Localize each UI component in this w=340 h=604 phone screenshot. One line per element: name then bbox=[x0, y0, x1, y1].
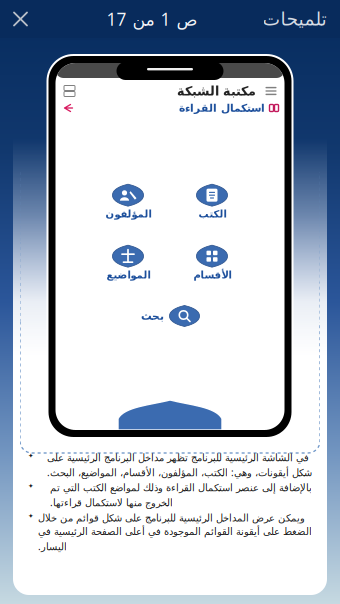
button[interactable]: الأقسام bbox=[176, 241, 248, 285]
staticText: ص 1 من 17 bbox=[106, 7, 197, 31]
staticText: تلميحات bbox=[262, 8, 326, 30]
staticText: المواضيع bbox=[106, 269, 150, 281]
button[interactable]: المؤلفون bbox=[92, 180, 164, 224]
staticText: ✦ bbox=[28, 482, 34, 490]
button[interactable]: قوائم bbox=[60, 82, 78, 100]
staticText: المؤلفون bbox=[105, 208, 151, 220]
button[interactable]: الكتب bbox=[176, 180, 248, 224]
button[interactable]: إغلاق bbox=[0, 0, 41, 37]
staticText: استكمال القراءة bbox=[178, 102, 264, 114]
staticText: مكتبة الشبكة bbox=[176, 84, 255, 98]
staticText: ✦ bbox=[28, 452, 34, 460]
staticText: في الشاشة الرئيسية للبرنامج تظهر مداخل ا… bbox=[47, 452, 312, 479]
button[interactable]: القائمة bbox=[262, 84, 279, 98]
staticText: بالإضافة إلى عنصر استكمال القراءة وذلك ل… bbox=[50, 482, 312, 509]
staticText: الأقسام bbox=[193, 269, 231, 281]
staticText: الكتب bbox=[198, 208, 226, 220]
button[interactable]: المواضيع bbox=[92, 241, 164, 285]
staticText: بحث bbox=[140, 310, 163, 322]
button[interactable]: رجوع bbox=[60, 101, 76, 115]
staticText: ويمكن عرض المداخل الرئيسية للبرنامج على … bbox=[38, 512, 312, 553]
button[interactable]: استكمال القراءة bbox=[178, 100, 279, 116]
button[interactable]: بحث bbox=[92, 302, 248, 330]
staticText: ✦ bbox=[28, 512, 34, 520]
